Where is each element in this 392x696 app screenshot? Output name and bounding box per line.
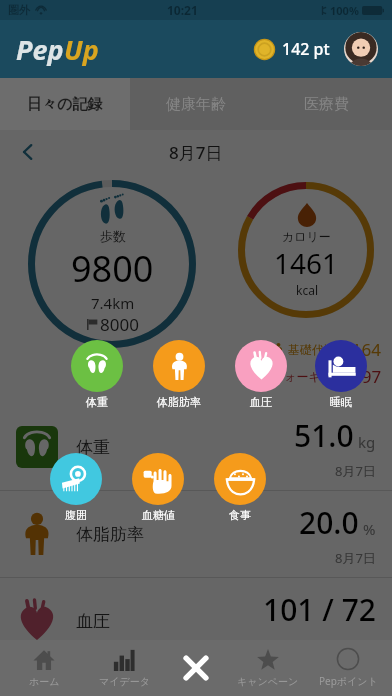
staticText: 8月7日: [335, 636, 376, 654]
staticText: マイデータ: [99, 675, 150, 688]
button[interactable]: Pepポイント: [312, 642, 384, 694]
staticText: 20.0: [299, 502, 359, 543]
button[interactable]: カロリー: [238, 182, 374, 318]
staticText: 腹囲: [65, 508, 87, 522]
staticText: 101 / 72: [263, 589, 376, 630]
staticText: 297: [352, 365, 382, 388]
button[interactable]: 体重: [71, 340, 123, 392]
staticText: 8000: [100, 313, 139, 336]
staticText: 10:21: [167, 2, 198, 18]
button[interactable]: 日々の記録: [0, 78, 130, 130]
staticText: 1164: [342, 338, 381, 361]
staticText: 血糖値: [142, 508, 175, 522]
button[interactable]: 睡眠: [315, 340, 367, 392]
button[interactable]: 体脂肪率: [0, 491, 392, 578]
staticText: 食事: [229, 508, 251, 522]
staticText: 日々の記録: [27, 95, 103, 114]
staticText: Pepポイント: [319, 674, 378, 688]
staticText: ホーム: [29, 675, 60, 688]
staticText: 8月7日: [335, 462, 376, 480]
staticText: Up: [64, 31, 99, 68]
button[interactable]: 体脂肪率: [153, 340, 205, 392]
button[interactable]: ホーム: [8, 643, 80, 694]
staticText: カロリー: [282, 229, 331, 244]
button[interactable]: Profile: [344, 32, 378, 66]
button[interactable]: キャンペーン: [232, 643, 304, 694]
staticText: 142 pt: [282, 38, 330, 60]
button[interactable]: 食事: [214, 453, 266, 505]
button[interactable]: Close menu: [168, 640, 224, 696]
button[interactable]: 体重: [0, 404, 392, 491]
button[interactable]: 腹囲: [50, 453, 102, 505]
staticText: %: [363, 519, 376, 539]
button[interactable]: Previous day: [8, 132, 48, 172]
staticText: 医療費: [304, 95, 349, 114]
staticText: 9800: [71, 244, 154, 293]
button[interactable]: 歩数: [28, 180, 196, 348]
staticText: 体脂肪率: [76, 524, 144, 545]
button[interactable]: 医療費: [261, 78, 392, 130]
staticText: ウォーキング: [272, 369, 346, 384]
staticText: kg: [358, 432, 376, 452]
staticText: 8月7日: [335, 549, 376, 567]
staticText: 歩数: [100, 228, 126, 244]
staticText: 8月7日: [169, 141, 223, 164]
button[interactable]: Dismiss menu: [0, 0, 392, 696]
staticText: 体重: [76, 437, 110, 458]
staticText: 睡眠: [330, 395, 352, 409]
staticText: Pep: [16, 31, 64, 68]
staticText: 基礎代謝: [288, 342, 336, 357]
staticText: 1461: [274, 244, 339, 282]
staticText: 圏外: [8, 3, 30, 17]
staticText: 血圧: [76, 611, 110, 632]
button[interactable]: Pep: [16, 31, 99, 68]
staticText: kcal: [296, 282, 318, 298]
staticText: キャンペーン: [237, 675, 299, 688]
button[interactable]: 健康年齢: [130, 78, 261, 130]
staticText: 体重: [86, 395, 108, 409]
staticText: 51.0: [294, 415, 354, 456]
staticText: 血圧: [250, 395, 272, 409]
button[interactable]: 142 pt: [250, 34, 334, 64]
staticText: 100%: [330, 3, 359, 18]
staticText: 体脂肪率: [157, 395, 201, 409]
staticText: 7.4km: [91, 293, 135, 313]
button[interactable]: マイデータ: [88, 643, 160, 694]
staticText: 健康年齢: [166, 95, 226, 114]
button[interactable]: 血糖値: [132, 453, 184, 505]
button[interactable]: 血圧: [235, 340, 287, 392]
button[interactable]: 血圧: [0, 578, 392, 665]
